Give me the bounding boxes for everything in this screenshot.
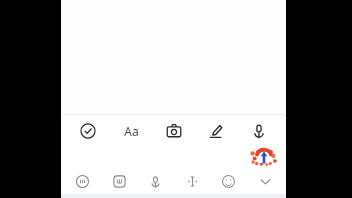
button[interactable]: Voice	[243, 115, 275, 146]
button[interactable]: Stickers	[67, 168, 97, 194]
button[interactable]: Text style	[115, 115, 147, 146]
staticText: Aa	[124, 123, 139, 139]
button[interactable]: Gallery	[104, 168, 134, 194]
button[interactable]: Collapse	[250, 168, 280, 194]
button[interactable]: Text cursor	[177, 168, 207, 194]
button[interactable]: Sticker	[251, 148, 277, 166]
button[interactable]: Microphone	[140, 168, 170, 194]
button[interactable]: Emoji	[213, 168, 243, 194]
button[interactable]: Done	[72, 115, 104, 146]
button[interactable]: Draw	[200, 115, 232, 146]
button[interactable]: Camera	[158, 115, 190, 146]
